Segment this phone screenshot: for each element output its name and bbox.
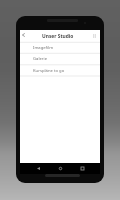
- staticText: Kurspläne to go: [33, 68, 65, 74]
- button[interactable]: Imagefilm: [20, 42, 100, 53]
- staticText: Imagefilm: [33, 45, 54, 51]
- button[interactable]: Kurspläne to go: [20, 65, 100, 76]
- button[interactable]: Search: [88, 29, 100, 42]
- button[interactable]: Back: [32, 163, 46, 174]
- button[interactable]: Recent apps: [76, 163, 90, 174]
- button[interactable]: Galerie: [20, 53, 100, 65]
- button[interactable]: Back: [20, 30, 31, 43]
- staticText: Unser Studio: [42, 33, 74, 40]
- button[interactable]: Home: [54, 163, 68, 174]
- staticText: Galerie: [33, 56, 48, 62]
- button: [20, 30, 100, 43]
